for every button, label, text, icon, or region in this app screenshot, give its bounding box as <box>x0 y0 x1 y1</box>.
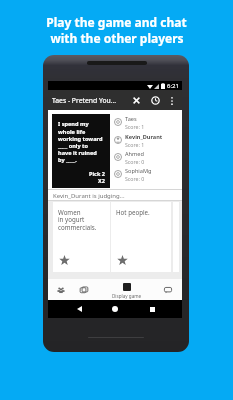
button[interactable]: Players <box>52 279 69 301</box>
staticText: I spend my whole life working toward ___… <box>58 120 103 164</box>
staticText: Ahmed <box>125 150 144 158</box>
staticText: Score: 0 <box>125 175 145 182</box>
staticText: Hot people. <box>116 208 166 216</box>
staticText: Kevin_Durant <box>125 133 163 141</box>
button[interactable]: I spend my whole life working toward ___… <box>52 114 110 188</box>
button[interactable]: SophiaMg <box>114 166 182 182</box>
staticText: Score: 1 <box>125 141 145 148</box>
button[interactable]: Timer <box>147 92 163 108</box>
staticText: Women in yogurt commercials. <box>58 208 105 232</box>
button[interactable]: Kevin_Durant <box>114 132 182 148</box>
staticText: Kevin_Durant is judging... <box>53 192 125 200</box>
staticText: Score: 0 <box>125 158 145 165</box>
staticText: X2 <box>98 177 105 184</box>
staticText: Play the game and chat <box>46 14 187 30</box>
staticText: Score: 1 <box>125 123 145 130</box>
button[interactable]: Back <box>71 300 87 318</box>
staticText: Display game <box>112 293 142 299</box>
button[interactable]: More options <box>165 94 178 107</box>
staticText: Taes - Pretend You... <box>52 96 117 105</box>
button[interactable]: Hot people. <box>111 202 171 272</box>
button[interactable]: Ahmed <box>114 149 182 165</box>
button[interactable]: Home <box>107 300 123 318</box>
staticText: with the other players <box>50 30 184 46</box>
staticText: 6:21 <box>167 82 179 90</box>
button[interactable]: Cards <box>75 279 92 301</box>
button[interactable]: Recent apps <box>144 300 160 318</box>
button[interactable]: Taes <box>114 114 182 130</box>
button[interactable]: Close <box>128 92 144 108</box>
button[interactable]: Chat <box>159 279 176 301</box>
staticText: Pick 2 <box>89 170 105 177</box>
staticText: Taes <box>125 115 137 123</box>
staticText: SophiaMg <box>125 167 152 175</box>
button[interactable]: Display game <box>107 279 147 301</box>
button[interactable]: Women in yogurt commercials. <box>53 202 110 272</box>
